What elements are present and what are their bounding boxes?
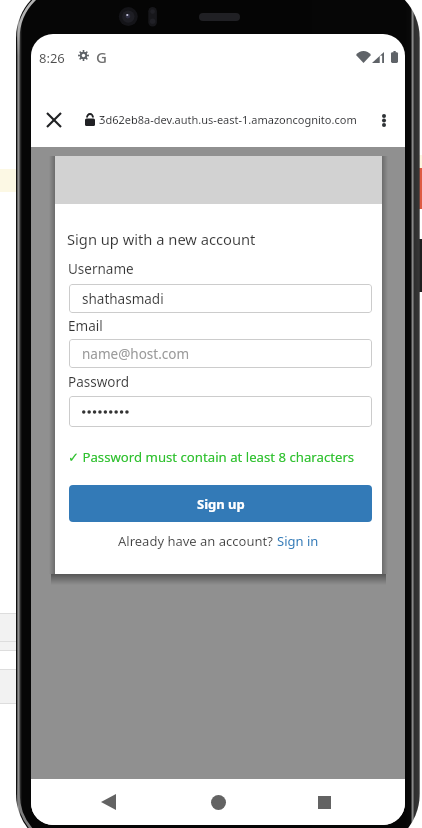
staticText: G bbox=[96, 47, 107, 67]
staticText: Username bbox=[68, 260, 134, 278]
staticText: Already have an account? bbox=[118, 532, 277, 550]
staticText: Sign up bbox=[197, 495, 245, 513]
button[interactable]: Back bbox=[88, 782, 128, 822]
button[interactable]: shathasmadi bbox=[69, 284, 372, 313]
button[interactable]: Close bbox=[33, 99, 74, 140]
button[interactable]: Recent apps bbox=[304, 782, 344, 822]
staticText: Password bbox=[68, 373, 130, 391]
staticText: Sign up with a new account bbox=[67, 229, 256, 249]
staticText: 8:26 bbox=[39, 49, 65, 67]
staticText: ✓ Password must contain at least 8 chara… bbox=[68, 448, 355, 466]
staticText: name@host.com bbox=[82, 345, 190, 363]
button[interactable]: name@host.com bbox=[69, 339, 372, 368]
button[interactable]: Home bbox=[198, 782, 238, 822]
button[interactable]: More options bbox=[364, 100, 404, 140]
staticText: Email bbox=[68, 317, 103, 335]
button[interactable]: Sign up bbox=[69, 485, 372, 522]
button[interactable] bbox=[69, 396, 372, 427]
staticText: Ʒd62eb8a-dev.auth.us-east-1.amazoncognit… bbox=[99, 112, 357, 127]
staticText: shathasmadi bbox=[82, 290, 164, 308]
button[interactable]: Sign in bbox=[277, 532, 319, 550]
